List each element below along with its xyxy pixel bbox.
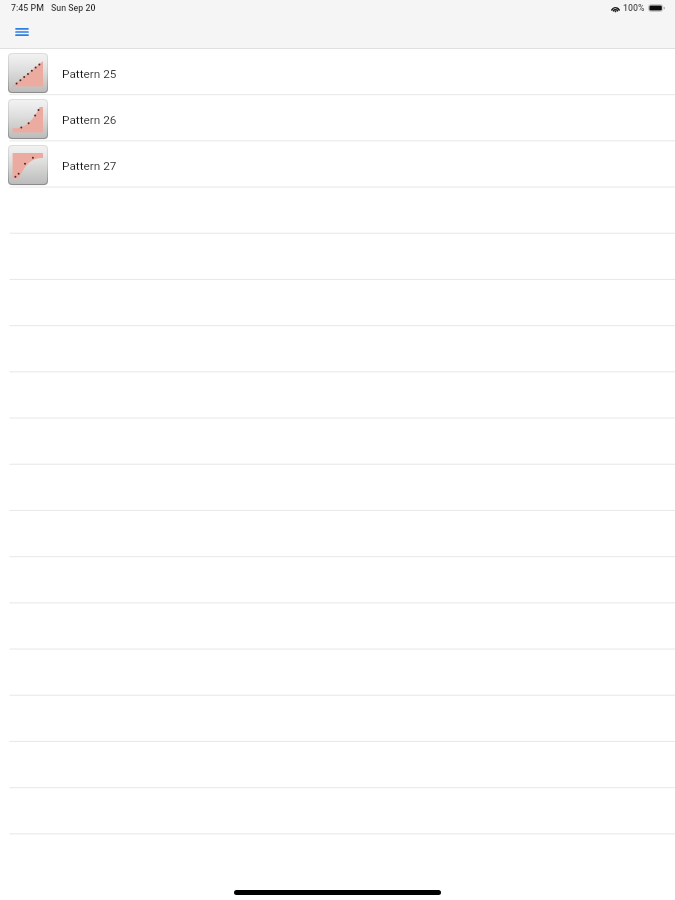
staticText: Pattern 25 [62, 67, 117, 81]
button[interactable] [0, 696, 675, 742]
staticText: Pattern 27 [62, 159, 117, 173]
button[interactable]: Pattern 27 [0, 141, 675, 187]
staticText: 7:45 PM [11, 3, 44, 13]
staticText: Sun Sep 20 [51, 3, 96, 13]
staticText: Pattern 26 [62, 113, 117, 127]
button[interactable]: Menu [10, 21, 34, 43]
button[interactable]: Pattern 26 [0, 95, 675, 141]
staticText: 100% [623, 3, 645, 13]
button[interactable] [0, 234, 675, 280]
button[interactable] [0, 465, 675, 511]
button[interactable]: Pattern 25 [0, 49, 675, 95]
